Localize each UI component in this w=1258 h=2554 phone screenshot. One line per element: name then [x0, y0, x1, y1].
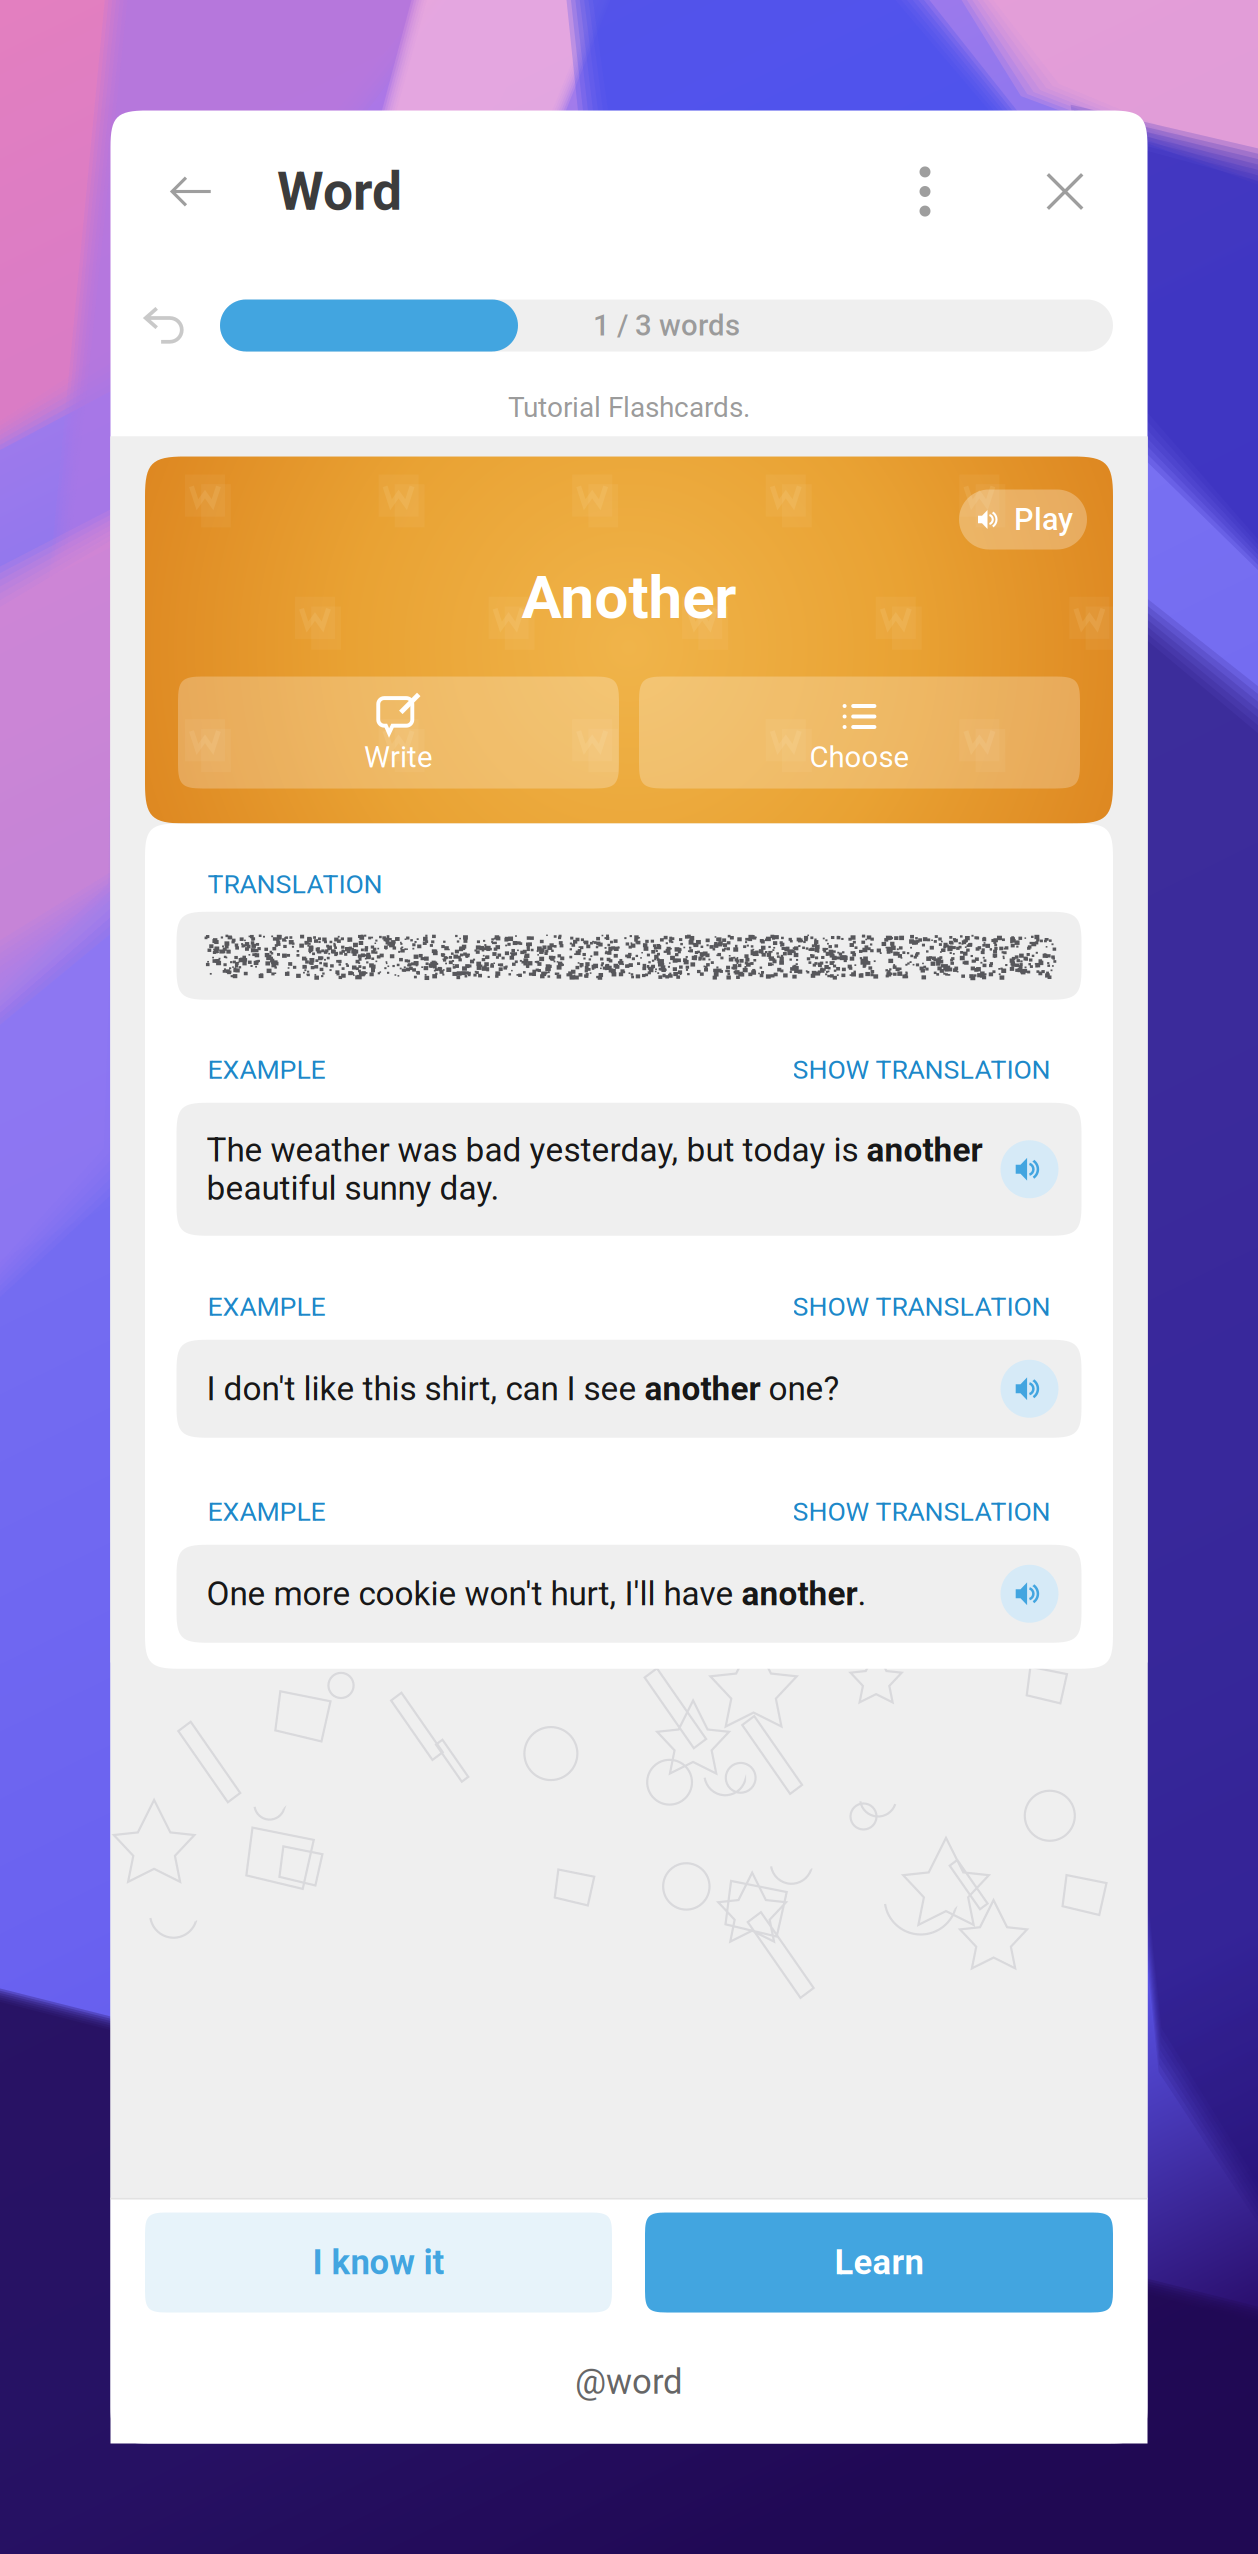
button[interactable]: EXAMPLE: [207, 1492, 325, 1531]
button[interactable]: Play pronunciation: [1000, 1565, 1058, 1623]
staticText: EXAMPLE: [207, 1291, 325, 1322]
button[interactable]: Learn: [645, 2212, 1113, 2312]
staticText: Play: [1014, 501, 1073, 537]
staticText: Write: [364, 740, 433, 774]
button[interactable]: Write: [178, 676, 619, 788]
staticText: I don't like this shirt, can I see anoth…: [206, 1370, 839, 1408]
staticText: EXAMPLE: [207, 1054, 325, 1085]
staticText: Learn: [834, 2242, 923, 2283]
button[interactable]: Play: [959, 489, 1087, 549]
button[interactable]: I know it: [145, 2212, 612, 2312]
button[interactable]: EXAMPLE: [207, 1287, 325, 1326]
button[interactable]: Close: [1015, 141, 1115, 241]
button[interactable]: EXAMPLE: [207, 1050, 325, 1089]
staticText: Choose: [809, 740, 909, 774]
button[interactable]: SHOW TRANSLATION: [792, 1492, 1050, 1531]
button[interactable]: Back: [111, 141, 271, 241]
staticText: The weather was bad yesterday, but today…: [206, 1131, 982, 1207]
staticText: One more cookie won't hurt, I'll have an…: [206, 1575, 866, 1613]
staticText: EXAMPLE: [207, 1496, 325, 1527]
button[interactable]: SHOW TRANSLATION: [792, 1050, 1050, 1089]
button[interactable]: More options: [877, 141, 973, 241]
button[interactable]: SHOW TRANSLATION: [792, 1287, 1050, 1326]
staticText: TRANSLATION: [207, 868, 382, 900]
staticText: Another: [521, 562, 736, 633]
staticText: I know it: [312, 2242, 444, 2283]
staticText: @word: [575, 2361, 683, 2402]
button[interactable]: Play pronunciation: [1000, 1140, 1058, 1198]
staticText: Word: [277, 160, 402, 223]
staticText: SHOW TRANSLATION: [792, 1054, 1050, 1085]
button[interactable]: Play pronunciation: [1000, 1360, 1058, 1418]
button[interactable]: Undo: [111, 282, 220, 368]
staticText: 1 / 3 words: [593, 308, 740, 343]
staticText: SHOW TRANSLATION: [792, 1496, 1050, 1527]
button[interactable]: Choose: [639, 676, 1080, 788]
button[interactable]: Word: [271, 141, 402, 241]
staticText: Tutorial Flashcards.: [508, 391, 750, 424]
staticText: SHOW TRANSLATION: [792, 1291, 1050, 1322]
